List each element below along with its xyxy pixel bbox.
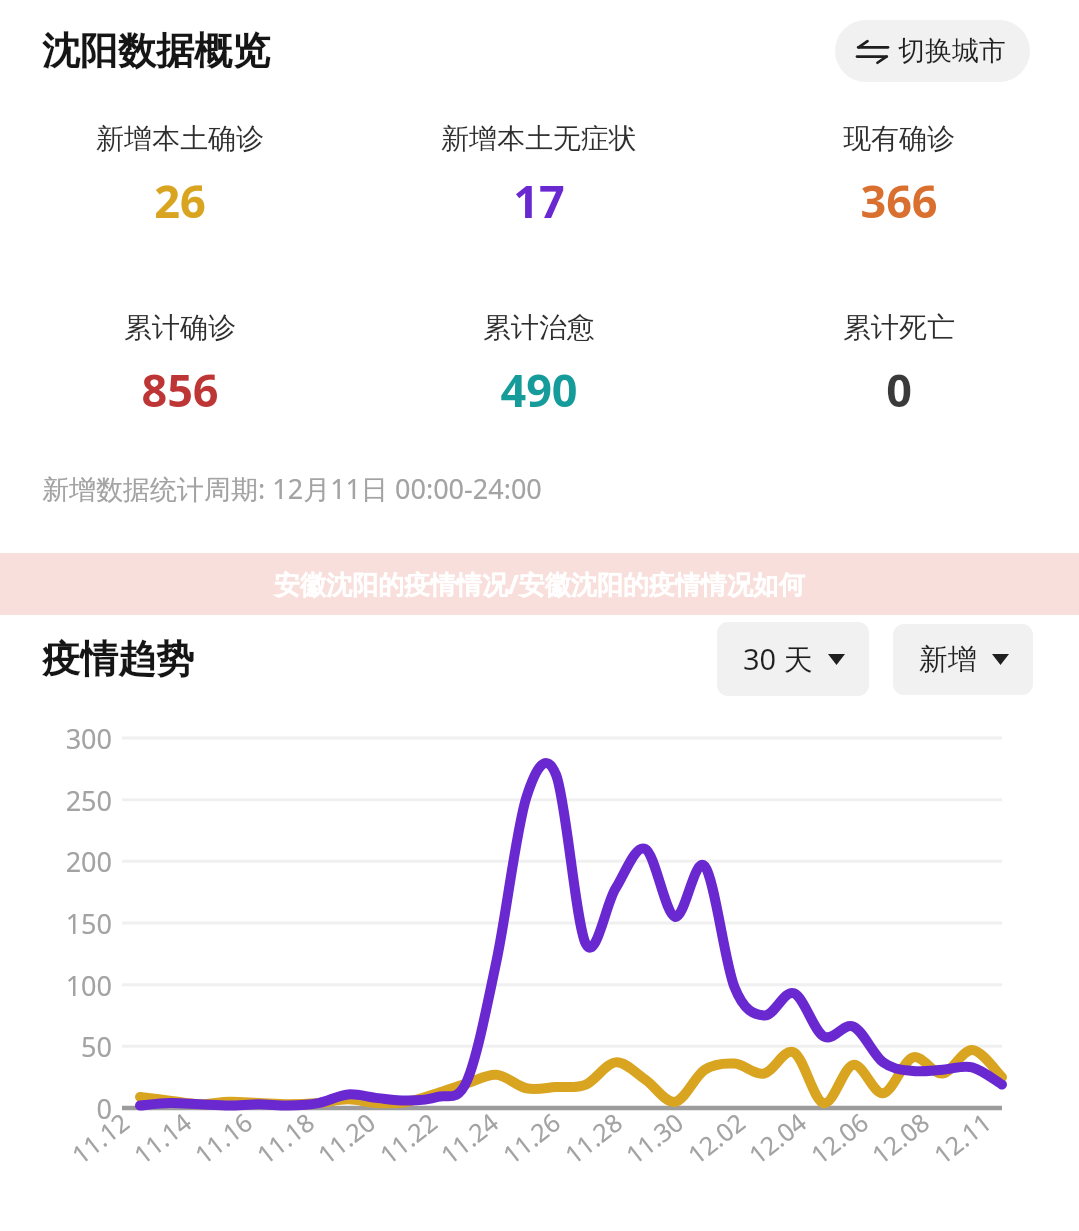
staticText: 12.11 [926, 1105, 998, 1171]
staticText: 26 [154, 170, 206, 231]
staticText: 17 [513, 170, 565, 231]
staticText: 11.24 [433, 1105, 505, 1171]
staticText: 0 [886, 359, 912, 420]
staticText: 11.12 [64, 1105, 136, 1171]
other: 切换城市 [857, 40, 888, 63]
staticText: 累计死亡 [843, 310, 955, 345]
staticText: 200 [0, 843, 112, 880]
staticText: 新增数据统计周期: 12月11日 00:00-24:00 [42, 470, 542, 507]
staticText: 300 [0, 720, 112, 757]
button[interactable]: 累计确诊 [0, 310, 359, 420]
staticText: 11.26 [495, 1105, 567, 1171]
staticText: 累计确诊 [124, 310, 236, 345]
staticText: 12.04 [741, 1105, 813, 1171]
staticText: 12.06 [803, 1105, 875, 1171]
button[interactable]: 新增本土确诊 [0, 121, 359, 231]
button[interactable]: 现有确诊 [719, 121, 1079, 231]
staticText: 150 [0, 905, 112, 942]
staticText: 490 [500, 359, 578, 420]
staticText: 50 [0, 1028, 112, 1065]
button[interactable]: 切换城市 [835, 20, 1030, 82]
staticText: 30 天 [743, 639, 813, 679]
staticText: 新增本土确诊 [96, 121, 264, 156]
staticText: 250 [0, 782, 112, 819]
staticText: 11.18 [249, 1105, 321, 1171]
staticText: 12.08 [864, 1105, 936, 1171]
button[interactable]: 30 天 [717, 622, 869, 696]
staticText: 11.14 [126, 1105, 198, 1171]
staticText: 11.22 [372, 1105, 444, 1171]
staticText: 新增 [919, 641, 977, 678]
staticText: 现有确诊 [843, 121, 955, 156]
staticText: 切换城市 [898, 34, 1006, 68]
button[interactable]: 新增 [893, 624, 1033, 695]
staticText: 856 [141, 359, 219, 420]
staticText: 疫情趋势 [42, 635, 194, 683]
staticText: 11.20 [310, 1105, 382, 1171]
staticText: 沈阳数据概览 [42, 27, 270, 75]
staticText: 366 [860, 170, 938, 231]
staticText: 11.30 [618, 1105, 690, 1171]
staticText: 12.02 [680, 1105, 752, 1171]
button[interactable]: 累计治愈 [359, 310, 719, 420]
staticText: 100 [0, 967, 112, 1004]
button[interactable]: 新增本土无症状 [359, 121, 719, 231]
button[interactable]: 累计死亡 [719, 310, 1079, 420]
staticText: 安徽沈阳的疫情情况/安徽沈阳的疫情情况如何 [274, 566, 805, 602]
staticText: 累计治愈 [483, 310, 595, 345]
staticText: 11.16 [187, 1105, 259, 1171]
staticText: 11.28 [557, 1105, 629, 1171]
staticText: 新增本土无症状 [441, 121, 637, 156]
staticText: 0 [0, 1090, 112, 1127]
